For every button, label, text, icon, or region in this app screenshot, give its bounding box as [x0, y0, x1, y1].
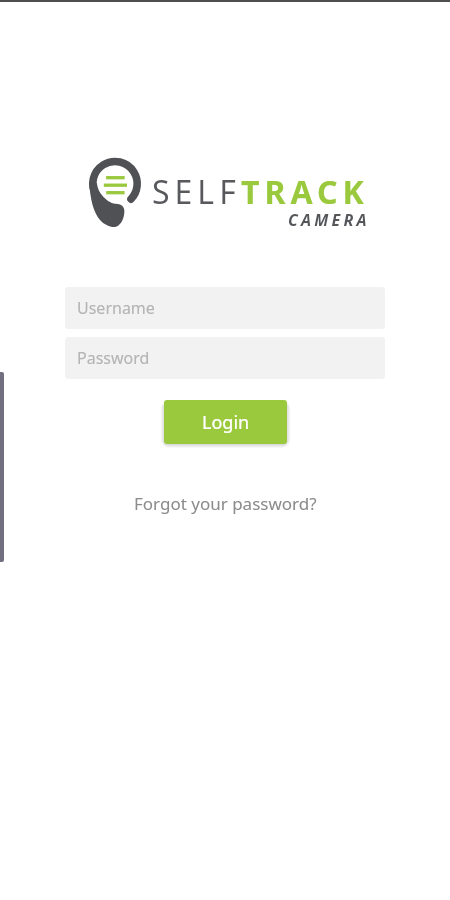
button[interactable]: Password: [65, 337, 385, 379]
staticText: Username: [77, 297, 155, 319]
staticText: CAMERA: [288, 209, 370, 231]
button[interactable]: Username: [65, 287, 385, 329]
button[interactable]: Forgot your password?: [126, 488, 325, 519]
staticText: SELF: [152, 170, 241, 214]
staticText: Login: [202, 410, 250, 435]
staticText: TRACK: [241, 170, 369, 214]
other: SelfTrack Camera logo: [89, 157, 141, 230]
staticText: Forgot your password?: [134, 492, 317, 515]
staticText: Password: [77, 347, 150, 369]
button[interactable]: Login: [164, 400, 287, 444]
